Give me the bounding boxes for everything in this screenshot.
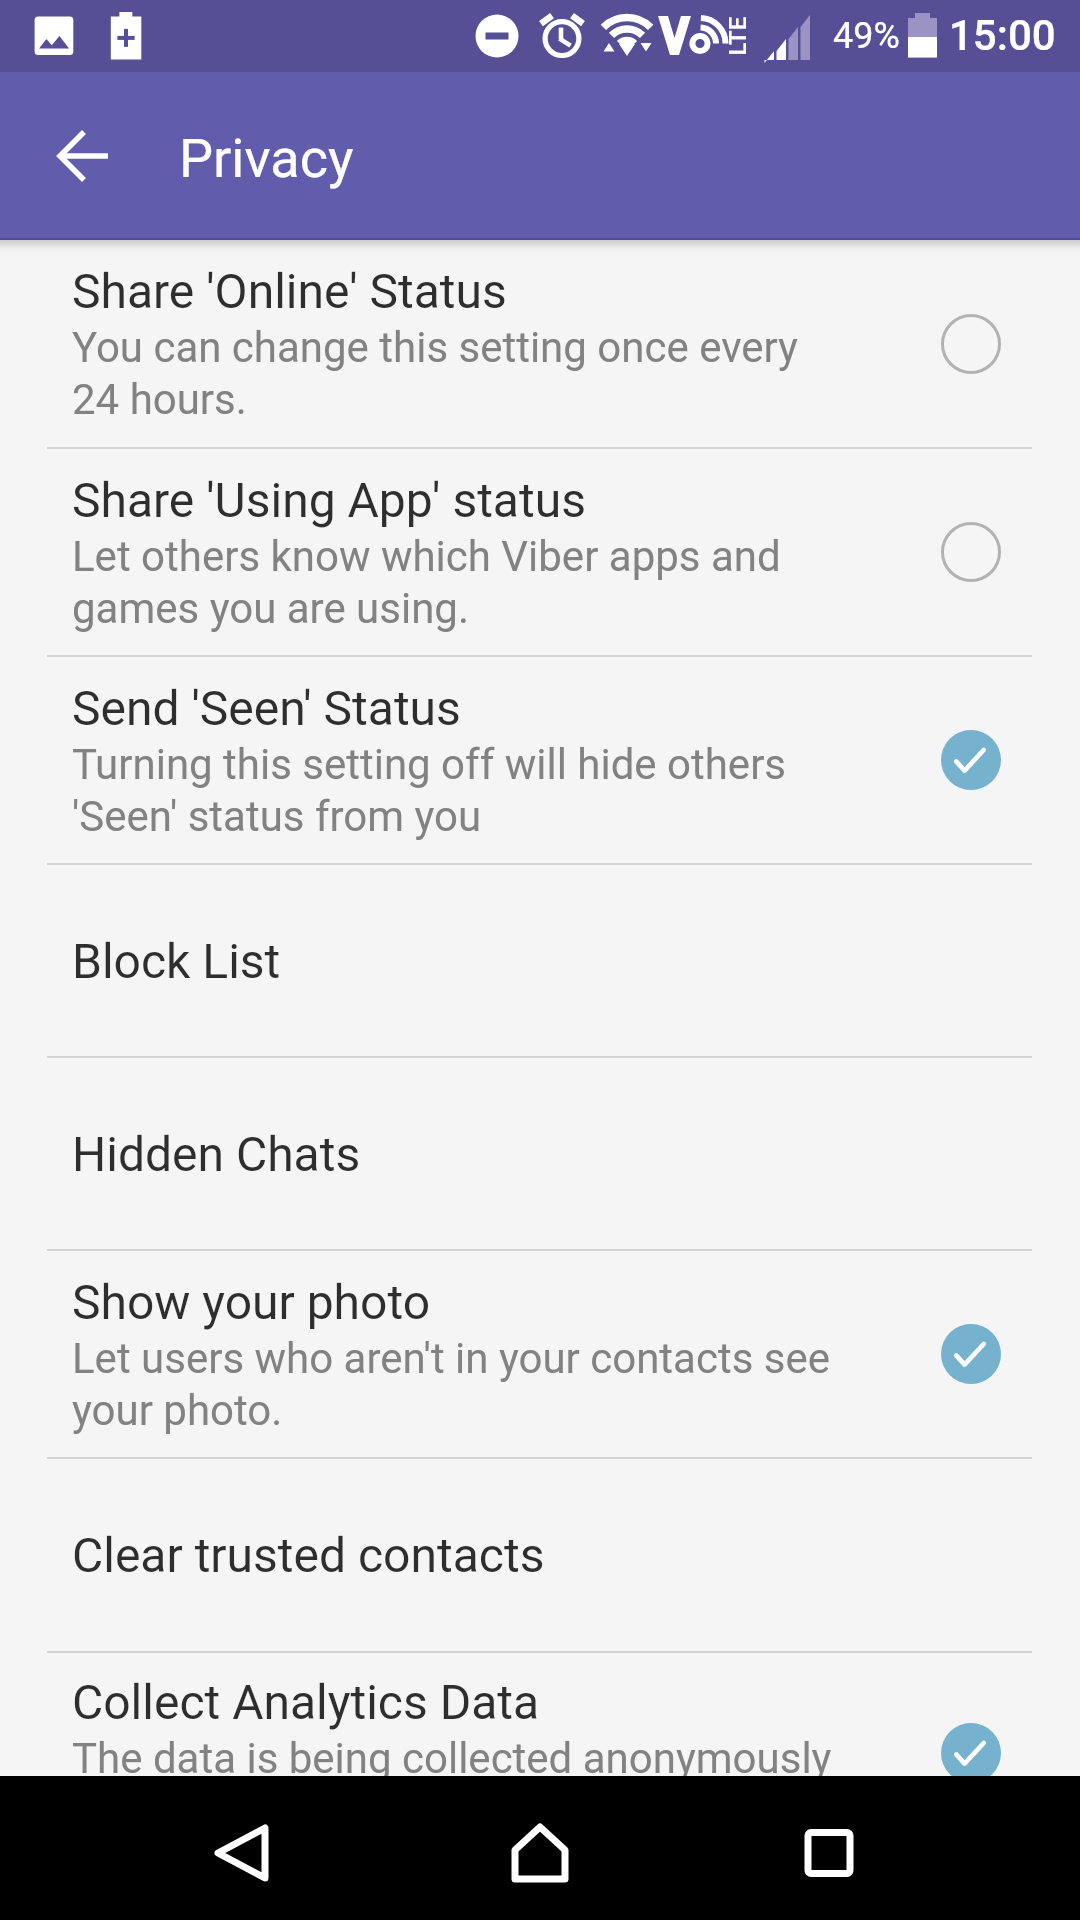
button[interactable]: Enabled — [939, 1322, 1003, 1386]
button[interactable]: Share 'Using App' status — [0, 449, 1080, 655]
button[interactable]: Clear trusted contacts — [0, 1459, 1080, 1651]
button[interactable]: Home — [485, 1798, 595, 1908]
staticText: Clear trusted contacts — [72, 1527, 545, 1583]
staticText: Share 'Online' Status — [72, 263, 507, 319]
staticText: Privacy — [179, 127, 354, 190]
button[interactable]: Navigate up — [36, 108, 132, 204]
button[interactable]: Hidden Chats — [0, 1058, 1080, 1249]
button[interactable]: Back — [188, 1798, 298, 1908]
staticText: 49% — [833, 15, 900, 57]
staticText: The data is being collected anonymously — [72, 1734, 832, 1783]
button[interactable]: Share 'Online' Status — [0, 240, 1080, 447]
staticText: Let users who aren't in your contacts se… — [72, 1334, 830, 1435]
button[interactable]: Enabled — [939, 728, 1003, 792]
staticText: 15:00 — [949, 11, 1056, 60]
staticText: Send 'Seen' Status — [72, 680, 461, 736]
button[interactable]: Send 'Seen' Status — [0, 657, 1080, 863]
staticText: Collect Analytics Data — [72, 1674, 540, 1730]
staticText: Block List — [72, 933, 281, 989]
button[interactable]: Block List — [0, 865, 1080, 1056]
staticText: You can change this setting once every 2… — [72, 323, 798, 424]
button[interactable]: Enabled — [939, 1721, 1003, 1785]
staticText: LTE — [723, 16, 751, 55]
button[interactable]: Disabled — [939, 312, 1003, 376]
button[interactable]: Recent apps — [774, 1798, 884, 1908]
button[interactable]: Disabled — [939, 520, 1003, 584]
button[interactable]: Collect Analytics Data — [0, 1653, 1080, 1859]
staticText: Hidden Chats — [72, 1126, 361, 1182]
staticText: Turning this setting off will hide other… — [72, 740, 787, 841]
staticText: Show your photo — [72, 1274, 431, 1330]
staticText: Share 'Using App' status — [72, 472, 586, 528]
staticText: Let others know which Viber apps and gam… — [72, 532, 781, 633]
button[interactable]: Show your photo — [0, 1251, 1080, 1457]
